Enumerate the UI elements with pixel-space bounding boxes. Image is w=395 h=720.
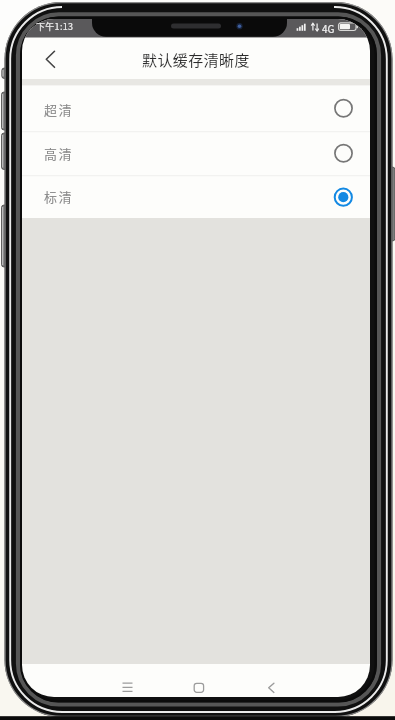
staticText: 默认缓存清晰度 [142,49,250,71]
button[interactable] [36,43,66,75]
button[interactable]: 标清 [22,175,370,218]
button[interactable] [178,673,219,697]
staticText: 标清 [44,187,74,206]
staticText: 超清 [44,100,74,119]
button[interactable]: 高清 [22,131,370,175]
staticText: 4G [322,21,335,34]
button[interactable]: 超清 [22,86,370,132]
staticText: 高清 [44,144,74,163]
button[interactable] [107,673,148,697]
button[interactable] [250,673,291,697]
staticText: 下午1:13 [36,20,74,33]
